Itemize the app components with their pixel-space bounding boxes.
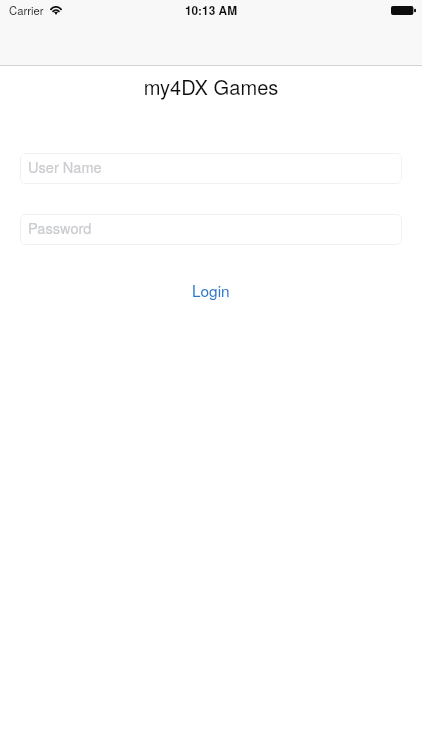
staticText: Password [28,217,92,238]
other: Wi-Fi signal [50,6,62,15]
button[interactable]: Password [20,214,402,245]
other: Battery full [391,6,416,15]
staticText: User Name [28,156,102,177]
staticText: 10:13 AM [0,2,422,19]
staticText: Login [192,279,230,301]
button[interactable]: Login [0,279,422,301]
staticText: Carrier [9,2,44,18]
staticText: my4DX Games [0,72,422,101]
button[interactable]: User Name [20,153,402,184]
